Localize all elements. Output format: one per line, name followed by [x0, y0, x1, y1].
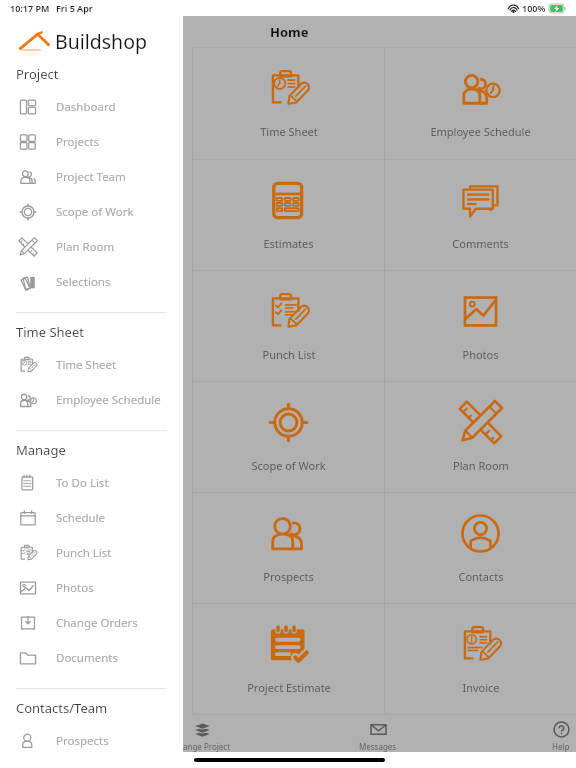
- button[interactable]: Selections: [0, 264, 183, 299]
- staticText: Projects: [56, 134, 100, 150]
- staticText: Contacts/Team: [16, 699, 108, 717]
- button[interactable]: Photos: [385, 271, 576, 381]
- button[interactable]: Invoice: [385, 604, 576, 714]
- staticText: Plan Room: [453, 458, 509, 473]
- staticText: Dashboard: [56, 99, 116, 115]
- button[interactable]: Project Estimate: [193, 604, 384, 714]
- button[interactable]: Projects: [0, 124, 183, 159]
- staticText: Punch List: [262, 347, 316, 362]
- staticText: Change Project: [183, 741, 231, 752]
- button[interactable]: To Do List: [0, 465, 183, 500]
- staticText: Messages: [359, 741, 397, 752]
- button[interactable]: Contacts: [385, 493, 576, 603]
- staticText: Plan Room: [56, 239, 115, 255]
- staticText: Project Team: [56, 169, 126, 185]
- staticText: Scope of Work: [56, 204, 134, 220]
- staticText: Change Orders: [56, 615, 138, 631]
- button[interactable]: Plan Room: [0, 229, 183, 264]
- button[interactable]: Scope of Work: [0, 194, 183, 229]
- button[interactable]: Plan Room: [385, 382, 576, 492]
- staticText: Punch List: [56, 545, 112, 561]
- button[interactable]: Change Orders: [0, 605, 183, 640]
- button[interactable]: Schedule: [0, 500, 183, 535]
- staticText: Time Sheet: [260, 124, 318, 139]
- button[interactable]: Punch List: [0, 535, 183, 570]
- button[interactable]: Messages: [334, 716, 422, 752]
- staticText: Buildshop: [55, 28, 147, 55]
- staticText: Employee Schedule: [430, 124, 531, 139]
- staticText: Invoice: [462, 680, 500, 695]
- staticText: Prospects: [263, 569, 314, 584]
- staticText: Contacts: [458, 569, 504, 584]
- staticText: Employee Schedule: [56, 392, 161, 408]
- staticText: To Do List: [56, 475, 109, 491]
- button[interactable]: Change Project: [183, 716, 246, 752]
- button[interactable]: Help: [517, 716, 576, 752]
- staticText: Comments: [452, 236, 509, 251]
- button[interactable]: Project Team: [0, 159, 183, 194]
- staticText: Schedule: [56, 510, 106, 526]
- staticText: Manage: [16, 441, 66, 459]
- staticText: 100%: [522, 2, 546, 14]
- button[interactable]: Employee Schedule: [385, 48, 576, 159]
- button[interactable]: Punch List: [193, 271, 384, 381]
- button[interactable]: Documents: [0, 640, 183, 675]
- button[interactable]: Comments: [385, 160, 576, 270]
- staticText: Project Estimate: [247, 680, 331, 695]
- staticText: Fri 5 Apr: [56, 2, 93, 14]
- button[interactable]: Prospects: [193, 493, 384, 603]
- button[interactable]: Prospects: [0, 723, 183, 758]
- staticText: Project: [16, 65, 59, 83]
- staticText: 10:17 PM: [10, 2, 50, 14]
- button[interactable]: Time Sheet: [193, 48, 384, 159]
- button[interactable]: Employee Schedule: [0, 382, 183, 417]
- staticText: Photos: [56, 580, 94, 596]
- staticText: Selections: [56, 274, 111, 290]
- button[interactable]: Photos: [0, 570, 183, 605]
- staticText: Home: [270, 23, 309, 41]
- staticText: Documents: [56, 650, 118, 666]
- staticText: Prospects: [56, 733, 109, 749]
- staticText: Time Sheet: [56, 357, 117, 373]
- button[interactable]: Estimates: [193, 160, 384, 270]
- button[interactable]: Time Sheet: [0, 347, 183, 382]
- staticText: Help: [552, 741, 570, 752]
- staticText: Photos: [462, 347, 499, 362]
- button[interactable]: Dashboard: [0, 89, 183, 124]
- button[interactable]: Scope of Work: [193, 382, 384, 492]
- staticText: Time Sheet: [16, 323, 84, 341]
- staticText: Scope of Work: [251, 458, 326, 473]
- staticText: Estimates: [263, 236, 314, 251]
